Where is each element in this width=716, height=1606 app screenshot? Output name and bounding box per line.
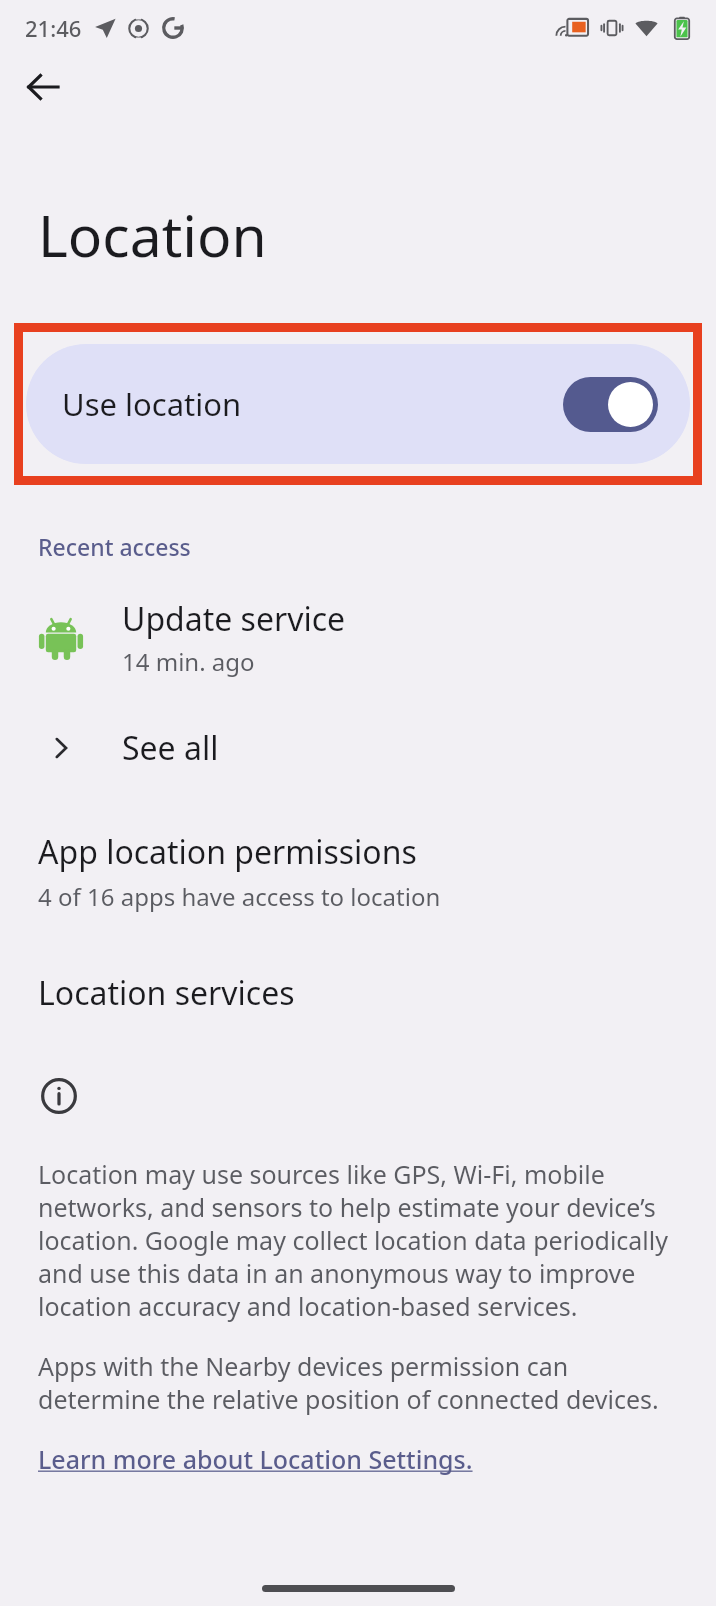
button[interactable]: App location permissions	[0, 828, 716, 915]
staticText: App location permissions	[38, 830, 417, 874]
staticText: Location may use sources like GPS, Wi-Fi…	[38, 1157, 692, 1323]
button[interactable]: Use location	[26, 344, 690, 464]
staticText: Recent access	[38, 531, 191, 562]
staticText: 14 min. ago	[122, 645, 255, 678]
button[interactable]: See all	[0, 720, 716, 776]
staticText: Location	[38, 196, 267, 274]
staticText: 21:46	[25, 13, 82, 43]
staticText: Update service	[122, 597, 346, 641]
staticText: Use location	[62, 383, 242, 425]
button[interactable]: Update service	[0, 593, 716, 682]
button[interactable]: Location services	[0, 969, 716, 1017]
staticText: Apps with the Nearby devices permission …	[38, 1349, 692, 1416]
staticText: See all	[122, 726, 219, 770]
button[interactable]: Back	[12, 56, 74, 118]
staticText: 4 of 16 apps have access to location	[38, 880, 441, 913]
button[interactable]: Learn more about Location Settings.	[38, 1442, 473, 1476]
